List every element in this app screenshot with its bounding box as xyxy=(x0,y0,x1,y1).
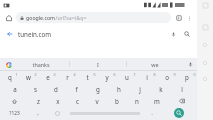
button[interactable]: Space xyxy=(67,107,143,119)
button[interactable]: ?123 xyxy=(0,107,29,119)
staticText: q xyxy=(8,73,12,81)
staticText: h xyxy=(117,85,121,93)
button[interactable]: Emoji xyxy=(47,107,67,119)
button[interactable]: t xyxy=(77,71,97,83)
button[interactable]: v xyxy=(87,95,107,107)
staticText: c xyxy=(76,97,79,105)
button[interactable]: q xyxy=(0,71,19,83)
button[interactable]: Search xyxy=(161,107,197,119)
staticText: d xyxy=(54,85,58,93)
staticText: g xyxy=(96,85,100,93)
button[interactable]: r xyxy=(57,71,77,83)
button[interactable]: Search xyxy=(181,28,193,40)
staticText: 7 xyxy=(133,72,136,77)
button[interactable]: we xyxy=(127,58,183,70)
button[interactable]: l xyxy=(171,83,192,95)
staticText: z xyxy=(37,97,40,105)
button[interactable]: a xyxy=(5,83,25,95)
button[interactable]: j xyxy=(129,83,150,95)
staticText: 6 xyxy=(113,72,116,77)
staticText: l xyxy=(181,85,183,93)
button[interactable]: Voice search xyxy=(167,28,179,40)
staticText: b xyxy=(115,97,119,105)
button[interactable]: w xyxy=(19,71,38,83)
staticText: a xyxy=(13,85,17,93)
button[interactable]: I xyxy=(70,58,126,70)
button[interactable]: d xyxy=(45,83,66,95)
staticText: thanks xyxy=(32,61,50,68)
button[interactable]: Google xyxy=(4,60,13,69)
button[interactable]: i xyxy=(137,71,157,83)
staticText: 3 xyxy=(53,72,56,77)
button[interactable]: Back xyxy=(0,25,197,42)
button[interactable]: Backspace xyxy=(167,95,197,107)
button[interactable]: h xyxy=(108,83,129,95)
staticText: j xyxy=(139,85,141,93)
staticText: p xyxy=(185,73,189,81)
button[interactable]: g xyxy=(87,83,108,95)
button[interactable]: f xyxy=(66,83,87,95)
button[interactable]: google.com xyxy=(16,12,171,23)
staticText: u xyxy=(125,73,129,81)
button[interactable]: s xyxy=(25,83,45,95)
button[interactable]: thanks xyxy=(13,58,69,70)
staticText: m xyxy=(154,97,160,105)
staticText: 0 xyxy=(193,72,196,77)
staticText: ?123 xyxy=(9,110,20,117)
staticText: n xyxy=(135,97,139,105)
button[interactable]: e xyxy=(38,71,57,83)
staticText: google.com xyxy=(26,14,55,21)
staticText: i xyxy=(146,73,148,81)
button[interactable]: Home xyxy=(3,12,14,23)
button[interactable]: p xyxy=(177,71,197,83)
staticText: tunein.com xyxy=(18,30,51,38)
button[interactable]: o xyxy=(157,71,177,83)
button[interactable]: Shift xyxy=(0,95,29,107)
staticText: f xyxy=(75,85,78,93)
staticText: 4 xyxy=(73,72,76,77)
staticText: w xyxy=(26,73,31,81)
staticText: I xyxy=(97,61,99,68)
button[interactable]: x xyxy=(48,95,67,107)
button[interactable]: More options xyxy=(184,13,194,23)
button[interactable]: k xyxy=(150,83,171,95)
staticText: 5 xyxy=(93,72,96,77)
staticText: /url?sa=t&q= xyxy=(55,14,87,21)
staticText: e xyxy=(46,73,50,81)
staticText: 9 xyxy=(173,72,176,77)
button[interactable]: Tabs xyxy=(173,12,184,23)
staticText: y xyxy=(105,73,109,81)
staticText: 8 xyxy=(153,72,156,77)
button[interactable]: z xyxy=(29,95,48,107)
staticText: x xyxy=(56,97,60,105)
staticText: . xyxy=(151,109,153,117)
staticText: r xyxy=(66,73,69,81)
button[interactable]: y xyxy=(97,71,117,83)
staticText: v xyxy=(95,97,99,105)
staticText: t xyxy=(86,73,89,81)
button[interactable]: u xyxy=(117,71,137,83)
staticText: s xyxy=(34,85,37,93)
staticText: 2 xyxy=(34,72,37,77)
staticText: k xyxy=(159,85,163,93)
button[interactable]: c xyxy=(67,95,87,107)
staticText: , xyxy=(37,109,39,117)
button[interactable]: Voice input xyxy=(183,58,197,70)
button[interactable]: m xyxy=(147,95,167,107)
staticText: o xyxy=(165,73,169,81)
button[interactable]: , xyxy=(29,107,47,119)
button[interactable]: b xyxy=(107,95,127,107)
staticText: we xyxy=(151,61,159,68)
button[interactable]: n xyxy=(127,95,147,107)
button[interactable]: Back xyxy=(4,28,15,39)
staticText: 1 xyxy=(15,72,18,77)
